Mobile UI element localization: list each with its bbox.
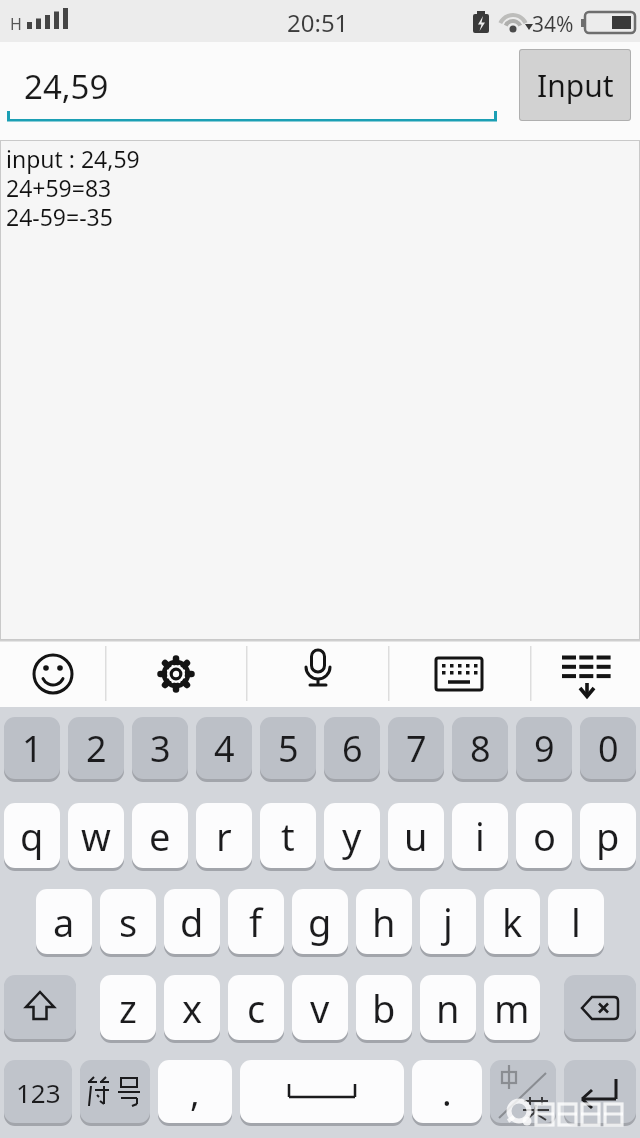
- button[interactable]: g: [292, 889, 348, 955]
- button[interactable]: [4, 975, 76, 1040]
- staticText: z: [119, 982, 137, 1034]
- button[interactable]: n: [420, 975, 476, 1041]
- button[interactable]: 123: [4, 1060, 72, 1124]
- button[interactable]: [388, 641, 530, 706]
- button[interactable]: f: [228, 889, 284, 955]
- staticText: Input: [537, 65, 614, 106]
- button[interactable]: y: [324, 803, 380, 869]
- staticText: 5: [278, 724, 299, 773]
- button[interactable]: 0: [580, 717, 636, 780]
- staticText: q: [20, 810, 44, 862]
- staticText: v: [310, 982, 330, 1034]
- staticText: e: [149, 810, 171, 862]
- button[interactable]: [490, 1060, 556, 1124]
- staticText: .: [442, 1068, 452, 1117]
- button[interactable]: [530, 641, 640, 706]
- staticText: p: [596, 810, 620, 862]
- button[interactable]: 9: [516, 717, 572, 780]
- staticText: H: [10, 13, 22, 35]
- staticText: d: [180, 896, 204, 948]
- staticText: 6: [342, 724, 363, 773]
- staticText: t: [281, 810, 295, 862]
- staticText: 1: [22, 724, 43, 773]
- staticText: ,: [190, 1068, 200, 1117]
- staticText: 0: [598, 724, 619, 773]
- button[interactable]: x: [164, 975, 220, 1041]
- staticText: j: [443, 896, 453, 948]
- button[interactable]: r: [196, 803, 252, 869]
- staticText: x: [182, 982, 203, 1034]
- staticText: c: [247, 982, 266, 1034]
- button[interactable]: [246, 641, 388, 706]
- button[interactable]: u: [388, 803, 444, 869]
- staticText: f: [249, 896, 263, 948]
- button[interactable]: e: [132, 803, 188, 869]
- button[interactable]: z: [100, 975, 156, 1041]
- staticText: g: [308, 896, 332, 948]
- staticText: 3: [150, 724, 171, 773]
- button[interactable]: 6: [324, 717, 380, 780]
- button[interactable]: q: [4, 803, 60, 869]
- staticText: s: [119, 896, 138, 948]
- staticText: u: [404, 810, 428, 862]
- button[interactable]: a: [36, 889, 92, 955]
- staticText: h: [372, 896, 396, 948]
- button[interactable]: k: [484, 889, 540, 955]
- button[interactable]: [0, 641, 105, 706]
- button[interactable]: 2: [68, 717, 124, 780]
- button[interactable]: 1: [4, 717, 60, 780]
- staticText: b: [372, 982, 396, 1034]
- button[interactable]: .: [412, 1060, 482, 1124]
- staticText: a: [53, 896, 75, 948]
- button[interactable]: ,: [158, 1060, 232, 1124]
- button[interactable]: 3: [132, 717, 188, 780]
- button[interactable]: Input: [519, 49, 631, 121]
- button[interactable]: w: [68, 803, 124, 869]
- button[interactable]: [80, 1060, 150, 1124]
- staticText: 34%: [532, 10, 574, 39]
- button[interactable]: 7: [388, 717, 444, 780]
- staticText: i: [475, 810, 485, 862]
- button[interactable]: h: [356, 889, 412, 955]
- button[interactable]: 8: [452, 717, 508, 780]
- button[interactable]: j: [420, 889, 476, 955]
- button[interactable]: [564, 975, 636, 1040]
- button[interactable]: i: [452, 803, 508, 869]
- button[interactable]: c: [228, 975, 284, 1041]
- staticText: m: [494, 982, 530, 1034]
- button[interactable]: p: [580, 803, 636, 869]
- staticText: r: [216, 810, 232, 862]
- button[interactable]: m: [484, 975, 540, 1041]
- staticText: 2: [86, 724, 107, 773]
- button[interactable]: s: [100, 889, 156, 955]
- staticText: y: [342, 810, 362, 862]
- staticText: 8: [470, 724, 491, 773]
- staticText: o: [533, 810, 556, 862]
- button[interactable]: [105, 641, 246, 706]
- staticText: k: [502, 896, 523, 948]
- staticText: 4: [214, 724, 235, 773]
- staticText: input : 24,59 24+59=83 24-59=-35: [6, 143, 140, 233]
- staticText: w: [81, 810, 111, 862]
- button[interactable]: l: [548, 889, 604, 955]
- staticText: n: [436, 982, 460, 1034]
- button[interactable]: t: [260, 803, 316, 869]
- staticText: l: [571, 896, 581, 948]
- staticText: 123: [16, 1075, 61, 1110]
- staticText: 9: [534, 724, 555, 773]
- button[interactable]: v: [292, 975, 348, 1041]
- button[interactable]: [240, 1060, 404, 1124]
- button[interactable]: d: [164, 889, 220, 955]
- staticText: 24,59: [24, 64, 109, 109]
- button[interactable]: 5: [260, 717, 316, 780]
- staticText: 20:51: [287, 6, 349, 39]
- button[interactable]: o: [516, 803, 572, 869]
- staticText: 7: [406, 724, 427, 773]
- button[interactable]: [564, 1060, 636, 1124]
- button[interactable]: 4: [196, 717, 252, 780]
- button[interactable]: b: [356, 975, 412, 1041]
